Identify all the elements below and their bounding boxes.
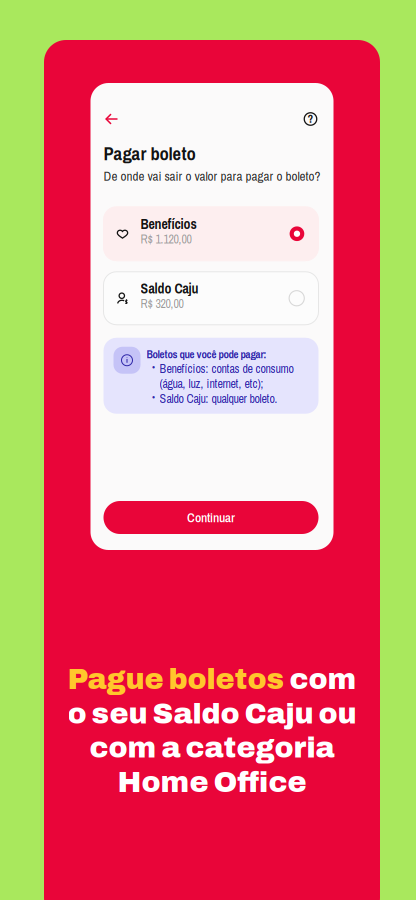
staticText: ? [307, 111, 313, 126]
staticText: com [284, 664, 356, 695]
button[interactable]: Voltar [103, 111, 119, 127]
staticText: Continuar [187, 509, 235, 526]
staticText: R$ 320,00 [140, 296, 183, 312]
staticText: Saldo Caju: qualquer boleto. [159, 391, 277, 407]
button[interactable]: Saldo Caju [103, 272, 318, 325]
staticText: Pague boletos [67, 664, 284, 695]
staticText: R$ 1.120,00 [140, 231, 191, 247]
staticText: Benefícios [140, 215, 196, 233]
button[interactable]: Benefícios [103, 207, 318, 261]
staticText: o seu Saldo Caju ou [67, 698, 356, 730]
button[interactable]: Ajuda [302, 111, 318, 127]
staticText: Benefícios: contas de consumo [159, 361, 293, 377]
staticText: Home Office [117, 767, 306, 798]
staticText: com a categoria [89, 732, 334, 764]
staticText: (água, luz, internet, etc); [159, 376, 263, 392]
staticText: Saldo Caju [140, 279, 198, 298]
staticText: • [152, 391, 155, 405]
staticText: Boletos que você pode pagar: [146, 347, 266, 362]
button[interactable]: Continuar [103, 501, 318, 534]
staticText: De onde vai sair o valor para pagar o bo… [103, 167, 320, 185]
staticText: Pagar boleto [103, 141, 195, 166]
staticText: • [152, 361, 155, 375]
